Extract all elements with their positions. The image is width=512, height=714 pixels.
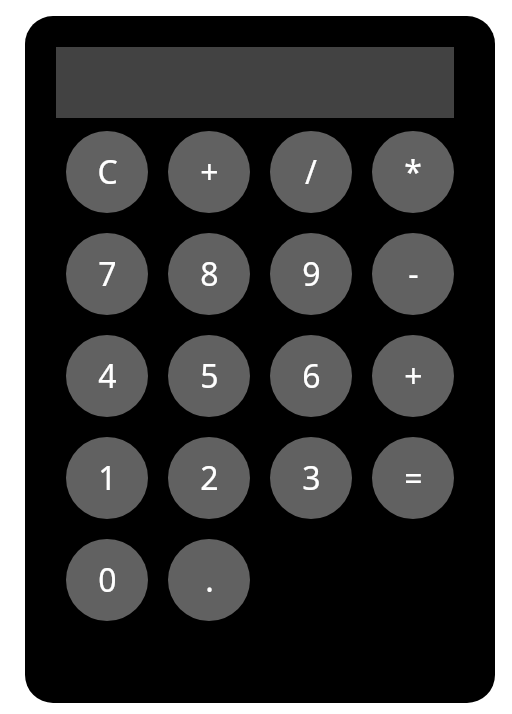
staticText: 0 bbox=[98, 558, 117, 602]
staticText: 4 bbox=[98, 354, 117, 398]
button[interactable]: 2 bbox=[168, 437, 250, 519]
staticText: C bbox=[97, 150, 118, 194]
button[interactable]: + bbox=[372, 335, 454, 417]
staticText: * bbox=[404, 150, 422, 194]
button[interactable]: 0 bbox=[66, 539, 148, 621]
staticText: + bbox=[404, 354, 423, 398]
button[interactable]: 7 bbox=[66, 233, 148, 315]
button[interactable]: 4 bbox=[66, 335, 148, 417]
staticText: - bbox=[408, 252, 419, 296]
button[interactable]: 3 bbox=[270, 437, 352, 519]
staticText: = bbox=[404, 456, 423, 500]
staticText: 6 bbox=[302, 354, 321, 398]
staticText: 3 bbox=[302, 456, 321, 500]
staticText: 8 bbox=[200, 252, 219, 296]
button[interactable]: + bbox=[168, 131, 250, 213]
button[interactable]: - bbox=[372, 233, 454, 315]
button[interactable]: 1 bbox=[66, 437, 148, 519]
button[interactable]: * bbox=[372, 131, 454, 213]
button[interactable]: C bbox=[66, 131, 148, 213]
staticText: / bbox=[305, 150, 317, 194]
staticText: 1 bbox=[98, 456, 117, 500]
staticText: + bbox=[200, 150, 219, 194]
staticText: 9 bbox=[302, 252, 321, 296]
button[interactable]: 9 bbox=[270, 233, 352, 315]
staticText: . bbox=[205, 558, 214, 602]
button[interactable]: . bbox=[168, 539, 250, 621]
button[interactable]: 5 bbox=[168, 335, 250, 417]
staticText: 5 bbox=[200, 354, 219, 398]
button[interactable]: = bbox=[372, 437, 454, 519]
button[interactable]: / bbox=[270, 131, 352, 213]
button[interactable]: 8 bbox=[168, 233, 250, 315]
staticText: 7 bbox=[98, 252, 117, 296]
staticText: 2 bbox=[200, 456, 219, 500]
button[interactable]: 6 bbox=[270, 335, 352, 417]
